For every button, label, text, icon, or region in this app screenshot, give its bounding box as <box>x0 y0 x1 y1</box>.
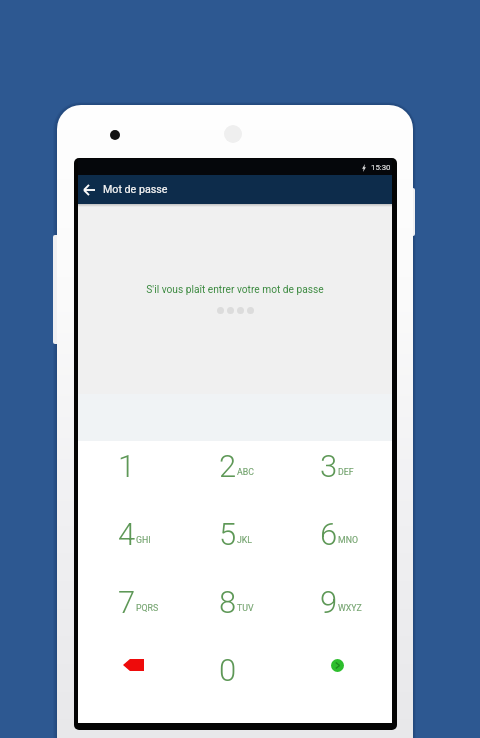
button[interactable]: 8 <box>183 573 288 633</box>
staticText: GHI <box>136 535 151 545</box>
staticText: PQRS <box>136 603 159 613</box>
staticText: TUV <box>237 603 254 613</box>
button[interactable]: 3 <box>287 437 392 497</box>
staticText: 3 <box>320 448 338 484</box>
staticText: 5 <box>219 516 237 552</box>
staticText: 8 <box>219 584 237 620</box>
button[interactable]: 1 <box>78 437 183 497</box>
staticText: 2 <box>219 448 237 484</box>
staticText: ABC <box>237 467 254 477</box>
staticText: 1 <box>118 448 136 484</box>
staticText: 15:30 <box>371 163 391 172</box>
button[interactable]: 5 <box>183 505 288 565</box>
staticText: 9 <box>320 584 338 620</box>
staticText: 0 <box>219 652 237 688</box>
staticText: WXYZ <box>338 603 362 613</box>
staticText: DEF <box>338 467 354 477</box>
staticText: 4 <box>118 516 136 552</box>
button[interactable]: Back <box>79 178 99 202</box>
button[interactable]: 0 <box>183 641 288 701</box>
staticText: S'il vous plaît entrer votre mot de pass… <box>146 284 324 296</box>
button[interactable]: 2 <box>183 437 288 497</box>
staticText: JKL <box>237 535 253 545</box>
button[interactable]: Backspace <box>78 641 183 701</box>
button[interactable]: 9 <box>287 573 392 633</box>
button[interactable]: Valider <box>287 641 392 701</box>
button[interactable]: 4 <box>78 505 183 565</box>
staticText: 7 <box>118 584 136 620</box>
staticText: 6 <box>320 516 338 552</box>
staticText: Mot de passe <box>103 183 168 196</box>
button[interactable]: 7 <box>78 573 183 633</box>
button[interactable]: 6 <box>287 505 392 565</box>
staticText: MNO <box>338 535 359 545</box>
